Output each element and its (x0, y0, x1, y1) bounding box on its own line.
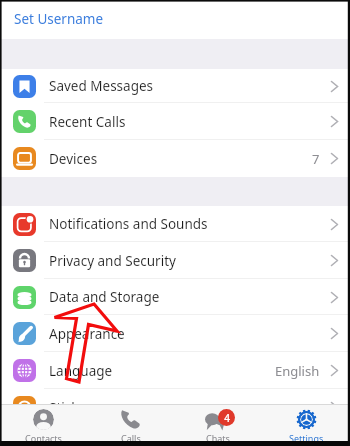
button[interactable]: Appearance (0, 315, 350, 352)
staticText: Stickers (49, 399, 99, 417)
button[interactable]: Devices (0, 140, 350, 177)
button[interactable]: Stickers (0, 389, 350, 426)
staticText: Calls (121, 432, 141, 441)
button[interactable]: Privacy and Security (0, 242, 350, 279)
staticText: Settings (289, 432, 324, 441)
staticText: English (275, 362, 320, 380)
button[interactable]: Saved Messages (0, 69, 350, 103)
button[interactable]: Set Username (0, 0, 350, 39)
staticText: Devices (49, 150, 98, 168)
staticText: 4 (224, 411, 230, 425)
button[interactable]: 4 (174, 404, 262, 441)
staticText: Notifications and Sounds (49, 215, 208, 233)
staticText: Recent Calls (49, 113, 126, 131)
staticText: Data and Storage (49, 288, 160, 306)
staticText: Privacy and Security (49, 252, 176, 270)
button[interactable]: Settings (262, 404, 350, 441)
staticText: Chats (206, 432, 230, 441)
staticText: Contacts (25, 432, 62, 441)
button[interactable]: Contacts (0, 404, 87, 441)
staticText: Language (49, 362, 113, 380)
button[interactable]: Notifications and Sounds (0, 206, 350, 242)
staticText: Saved Messages (49, 77, 154, 95)
staticText: Appearance (49, 325, 125, 343)
button[interactable]: Calls (87, 404, 174, 441)
staticText: Set Username (14, 10, 104, 28)
button[interactable]: Language (0, 352, 350, 389)
button[interactable]: Data and Storage (0, 279, 350, 315)
button[interactable]: Recent Calls (0, 103, 350, 140)
staticText: 7 (312, 150, 320, 168)
